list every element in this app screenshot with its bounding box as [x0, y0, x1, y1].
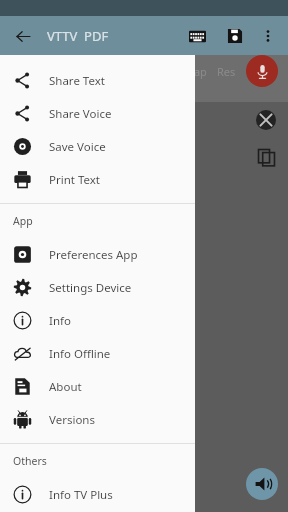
- staticText: Settings Device: [49, 280, 132, 296]
- button[interactable]: Copy: [257, 148, 276, 167]
- button[interactable]: Speak: [246, 468, 278, 500]
- staticText: Info: [49, 313, 71, 329]
- button[interactable]: Save: [221, 22, 249, 50]
- button[interactable]: Share Voice: [0, 97, 195, 130]
- staticText: Info TV Plus: [49, 487, 113, 503]
- button[interactable]: Print Text: [0, 163, 195, 196]
- staticText: About: [49, 379, 82, 395]
- staticText: VTTV PDF: [47, 27, 109, 45]
- button[interactable]: Back: [10, 23, 36, 49]
- staticText: Versions: [49, 412, 95, 428]
- button[interactable]: More options: [255, 23, 281, 49]
- staticText: Share Text: [49, 73, 105, 89]
- staticText: Save Voice: [49, 139, 106, 155]
- button[interactable]: Save Voice: [0, 130, 195, 163]
- button[interactable]: Info Offline: [0, 337, 195, 370]
- button[interactable]: Info TV Plus: [0, 478, 195, 511]
- button[interactable]: About: [0, 370, 195, 403]
- staticText: App: [13, 214, 33, 228]
- button[interactable]: Keyboard: [183, 22, 211, 50]
- button[interactable]: Versions: [0, 403, 195, 436]
- staticText: Res: [217, 64, 236, 79]
- button[interactable]: Share Text: [0, 64, 195, 97]
- button[interactable]: Clear: [256, 110, 276, 130]
- button[interactable]: Settings Device: [0, 271, 195, 304]
- staticText: Cap: [187, 64, 207, 79]
- button[interactable]: Preferences App: [0, 238, 195, 271]
- staticText: Share Voice: [49, 106, 112, 122]
- staticText: Info Offline: [49, 346, 111, 362]
- staticText: Preferences App: [49, 247, 138, 263]
- button[interactable]: Info: [0, 304, 195, 337]
- staticText: Others: [13, 454, 47, 468]
- staticText: Print Text: [49, 172, 101, 188]
- button[interactable]: Record: [246, 55, 278, 87]
